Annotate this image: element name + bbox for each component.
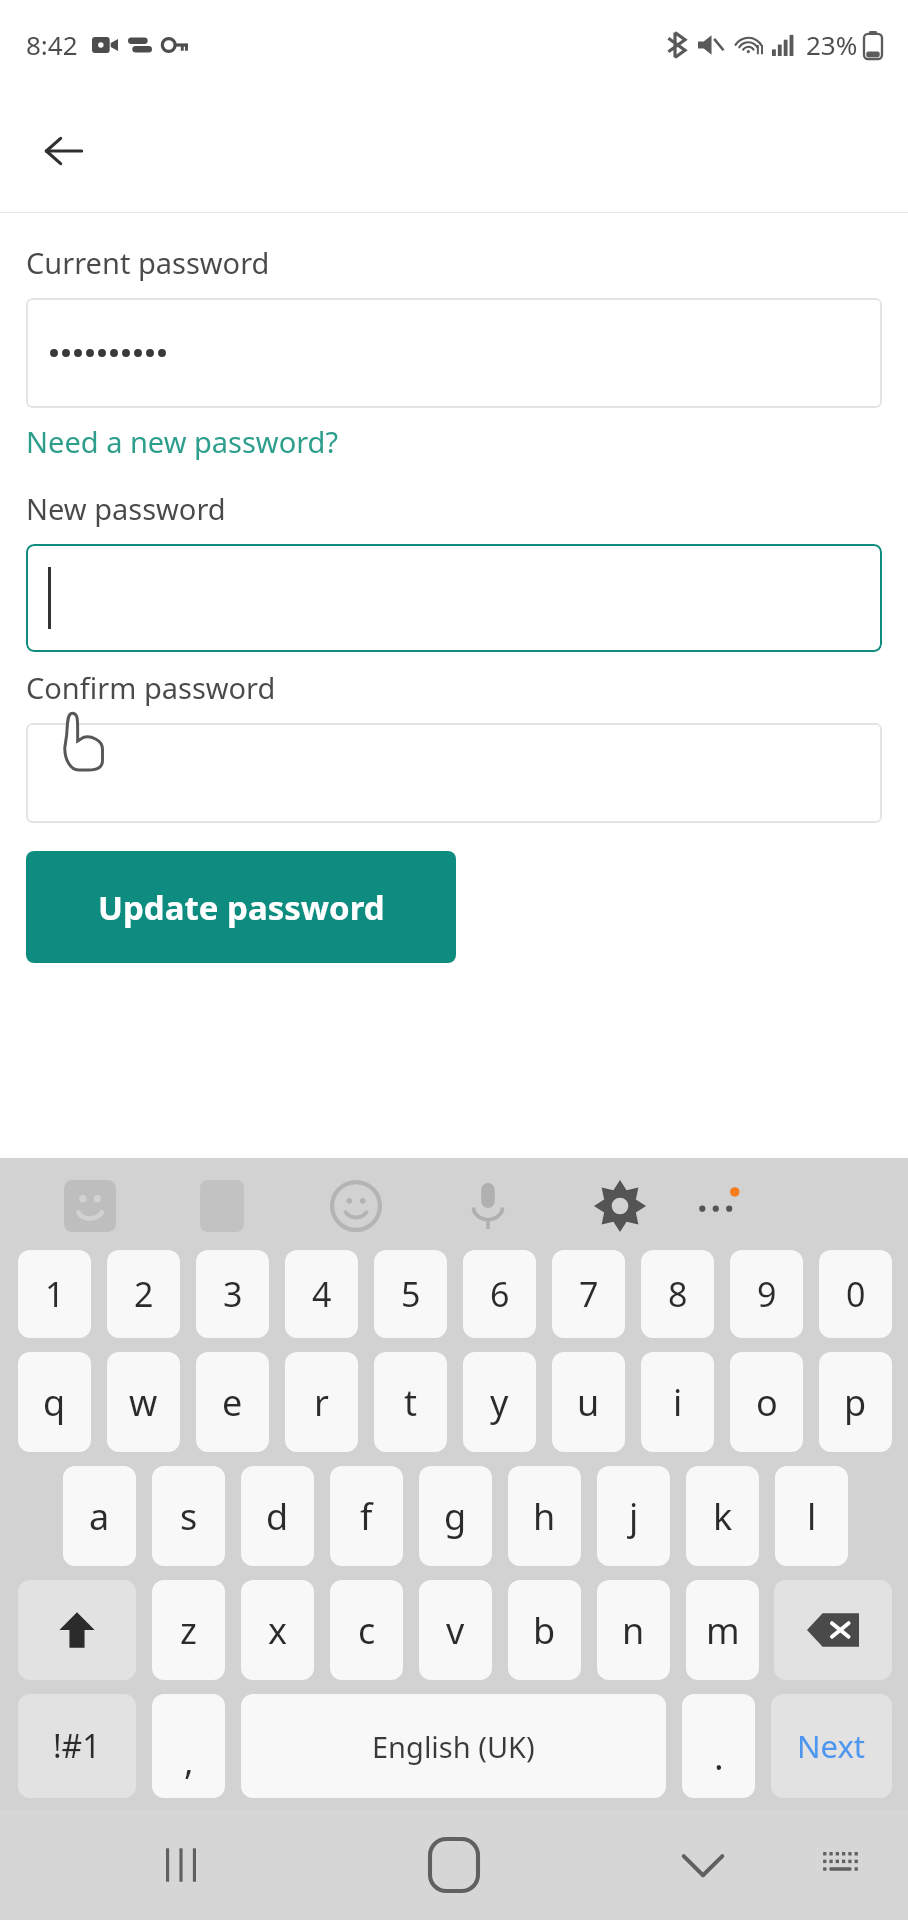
staticText: 3 xyxy=(223,1271,243,1317)
staticText: !#1 xyxy=(53,1724,101,1768)
staticText: Current password xyxy=(26,243,270,282)
staticText: . xyxy=(714,1732,724,1781)
button[interactable]: k xyxy=(686,1466,759,1566)
button[interactable]: m xyxy=(686,1580,759,1680)
staticText: Update password xyxy=(98,885,385,930)
button[interactable]: English (UK) xyxy=(241,1694,666,1798)
button[interactable]: Voice input xyxy=(462,1180,514,1232)
staticText: m xyxy=(706,1606,740,1655)
button[interactable]: Stickers xyxy=(64,1180,116,1232)
button[interactable]: 6 xyxy=(463,1250,536,1338)
staticText: 7 xyxy=(579,1271,599,1317)
staticText: i xyxy=(673,1378,683,1427)
button[interactable]: h xyxy=(508,1466,581,1566)
button[interactable]: 8 xyxy=(641,1250,714,1338)
button[interactable]: Home xyxy=(399,1810,509,1920)
staticText: d xyxy=(266,1492,289,1541)
button[interactable]: x xyxy=(241,1580,314,1680)
staticText: 4 xyxy=(312,1271,332,1317)
button[interactable]: v xyxy=(419,1580,492,1680)
button[interactable]: 3 xyxy=(196,1250,269,1338)
button[interactable]: r xyxy=(285,1352,358,1452)
button[interactable]: 1 xyxy=(18,1250,91,1338)
button[interactable]: s xyxy=(152,1466,225,1566)
button[interactable]: l xyxy=(775,1466,848,1566)
button[interactable]: n xyxy=(597,1580,670,1680)
button[interactable]: p xyxy=(819,1352,892,1452)
button[interactable]: Shift xyxy=(18,1580,136,1680)
button[interactable] xyxy=(26,723,882,823)
staticText: 1 xyxy=(45,1271,65,1317)
staticText: o xyxy=(756,1378,778,1427)
button[interactable]: 0 xyxy=(819,1250,892,1338)
button[interactable]: . xyxy=(682,1694,755,1798)
button[interactable]: a xyxy=(63,1466,136,1566)
button[interactable]: GIF xyxy=(196,1180,248,1232)
button[interactable]: More options xyxy=(690,1184,746,1228)
button[interactable]: Backspace xyxy=(774,1580,892,1680)
button[interactable]: Next xyxy=(771,1694,892,1798)
staticText: 9 xyxy=(757,1271,777,1317)
staticText: Need a new password? xyxy=(26,422,339,461)
button[interactable]: Keyboard settings xyxy=(594,1180,646,1232)
button[interactable]: 7 xyxy=(552,1250,625,1338)
button[interactable]: t xyxy=(374,1352,447,1452)
button[interactable]: , xyxy=(152,1694,225,1798)
button[interactable]: i xyxy=(641,1352,714,1452)
button[interactable]: o xyxy=(730,1352,803,1452)
button[interactable] xyxy=(26,298,882,408)
button[interactable]: c xyxy=(330,1580,403,1680)
staticText: c xyxy=(358,1606,376,1655)
staticText: , xyxy=(184,1736,194,1785)
button[interactable]: Update password xyxy=(26,851,456,963)
staticText: f xyxy=(360,1492,373,1541)
button[interactable]: Need a new password? xyxy=(26,422,339,461)
staticText: g xyxy=(444,1492,467,1541)
button[interactable]: e xyxy=(196,1352,269,1452)
staticText: l xyxy=(807,1492,817,1541)
button[interactable]: 9 xyxy=(730,1250,803,1338)
staticText: h xyxy=(533,1492,556,1541)
staticText: 8 xyxy=(668,1271,688,1317)
staticText: b xyxy=(533,1606,556,1655)
staticText: p xyxy=(844,1378,867,1427)
button[interactable]: w xyxy=(107,1352,180,1452)
staticText: n xyxy=(622,1606,645,1655)
button[interactable]: q xyxy=(18,1352,91,1452)
staticText: t xyxy=(404,1378,417,1427)
button[interactable]: Recent apps xyxy=(160,1810,908,1920)
staticText: u xyxy=(577,1378,600,1427)
button[interactable]: y xyxy=(463,1352,536,1452)
staticText: v xyxy=(446,1606,465,1655)
button[interactable]: Back xyxy=(26,113,102,189)
staticText: s xyxy=(180,1492,198,1541)
staticText: 0 xyxy=(846,1271,866,1317)
button[interactable]: Change keyboard xyxy=(820,1810,908,1920)
staticText: Next xyxy=(797,1725,866,1767)
button[interactable]: z xyxy=(152,1580,225,1680)
button[interactable]: 4 xyxy=(285,1250,358,1338)
staticText: Confirm password xyxy=(26,668,276,707)
staticText: New password xyxy=(26,489,226,528)
button[interactable]: j xyxy=(597,1466,670,1566)
staticText: 8:42 xyxy=(26,27,78,62)
button[interactable]: 5 xyxy=(374,1250,447,1338)
staticText: a xyxy=(89,1492,110,1541)
staticText: q xyxy=(43,1378,66,1427)
staticText: w xyxy=(129,1378,158,1427)
staticText: j xyxy=(629,1492,639,1541)
button[interactable]: u xyxy=(552,1352,625,1452)
staticText: 5 xyxy=(401,1271,421,1317)
button[interactable]: b xyxy=(508,1580,581,1680)
button[interactable] xyxy=(26,544,882,652)
staticText: 2 xyxy=(134,1271,154,1317)
button[interactable]: d xyxy=(241,1466,314,1566)
staticText: 23% xyxy=(806,27,858,62)
button[interactable]: f xyxy=(330,1466,403,1566)
staticText: e xyxy=(222,1378,243,1427)
button[interactable]: 2 xyxy=(107,1250,180,1338)
button[interactable]: g xyxy=(419,1466,492,1566)
button[interactable]: Hide keyboard xyxy=(680,1810,908,1920)
button[interactable]: Emoji xyxy=(330,1180,382,1232)
button[interactable]: !#1 xyxy=(18,1694,136,1798)
